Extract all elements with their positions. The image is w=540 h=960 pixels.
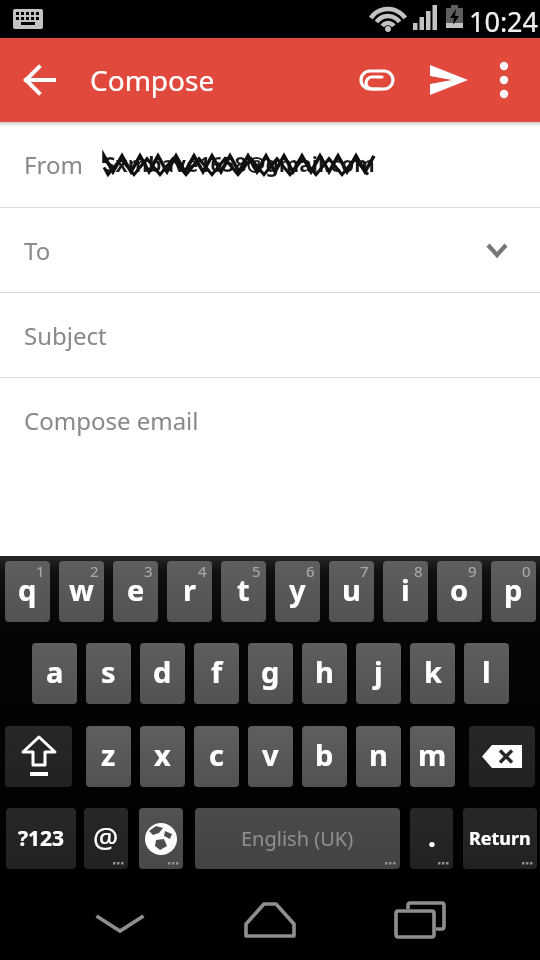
button[interactable]: a: [32, 643, 77, 704]
button[interactable]: i: [383, 561, 428, 622]
staticText: 5: [252, 561, 261, 581]
button[interactable]: [12, 52, 68, 108]
staticText: 6: [306, 561, 315, 581]
button[interactable]: [469, 726, 535, 787]
staticText: ?123: [18, 824, 65, 853]
staticText: c: [209, 735, 224, 774]
button[interactable]: English (UK): [195, 808, 400, 869]
staticText: n: [369, 735, 388, 774]
staticText: English (UK): [241, 825, 354, 852]
staticText: .: [428, 817, 436, 855]
button[interactable]: p: [491, 561, 536, 622]
button[interactable]: n: [356, 726, 401, 787]
staticText: 8: [414, 561, 423, 581]
staticText: 3: [144, 561, 153, 581]
button[interactable]: From: [0, 122, 540, 207]
button[interactable]: [45, 880, 195, 960]
staticText: 1: [36, 561, 45, 581]
staticText: g: [261, 652, 280, 691]
staticText: k: [424, 652, 442, 691]
button[interactable]: Return: [463, 808, 537, 869]
staticText: 9: [468, 561, 477, 581]
button[interactable]: z: [86, 726, 131, 787]
staticText: m: [418, 735, 447, 774]
button[interactable]: q: [5, 561, 50, 622]
button[interactable]: e: [113, 561, 158, 622]
button[interactable]: v: [248, 726, 293, 787]
staticText: r: [183, 570, 196, 609]
button[interactable]: f: [194, 643, 239, 704]
staticText: u: [342, 570, 361, 609]
button[interactable]: w: [59, 561, 104, 622]
button[interactable]: c: [194, 726, 239, 787]
staticText: e: [127, 570, 145, 609]
staticText: h: [315, 652, 334, 691]
staticText: w: [69, 570, 94, 609]
staticText: @: [93, 818, 119, 856]
button[interactable]: o: [437, 561, 482, 622]
staticText: j: [374, 652, 383, 691]
staticText: Subject: [24, 319, 107, 352]
button[interactable]: y: [275, 561, 320, 622]
button[interactable]: .: [410, 808, 453, 869]
button[interactable]: d: [140, 643, 185, 704]
staticText: v: [262, 735, 279, 774]
staticText: 4: [198, 561, 207, 581]
button[interactable]: [195, 880, 345, 960]
button[interactable]: b: [302, 726, 347, 787]
staticText: Return: [469, 826, 531, 851]
button[interactable]: m: [410, 726, 455, 787]
staticText: z: [101, 735, 116, 774]
staticText: Compose email: [24, 404, 199, 437]
staticText: b: [315, 735, 334, 774]
staticText: 7: [360, 561, 369, 581]
button[interactable]: t: [221, 561, 266, 622]
button[interactable]: l: [464, 643, 509, 704]
staticText: 10:24: [469, 3, 539, 40]
staticText: p: [504, 570, 523, 609]
staticText: To: [24, 234, 51, 267]
staticText: Compose: [90, 61, 215, 99]
staticText: 0: [522, 561, 531, 581]
button[interactable]: s: [86, 643, 131, 704]
staticText: Sxmbave1658@gmail.com: [104, 150, 375, 179]
staticText: a: [46, 652, 64, 691]
staticText: i: [401, 570, 410, 609]
button[interactable]: [5, 726, 72, 787]
button[interactable]: [420, 51, 478, 109]
button[interactable]: [348, 51, 406, 109]
button[interactable]: x: [140, 726, 185, 787]
staticText: From: [24, 148, 83, 181]
staticText: s: [101, 652, 116, 691]
staticText: f: [211, 652, 223, 691]
button[interactable]: k: [410, 643, 455, 704]
button[interactable]: @: [84, 808, 128, 869]
staticText: 2: [90, 561, 99, 581]
staticText: x: [154, 735, 171, 774]
button[interactable]: h: [302, 643, 347, 704]
button[interactable]: Subject: [0, 293, 540, 377]
staticText: d: [153, 652, 172, 691]
staticText: q: [18, 570, 37, 609]
button[interactable]: [139, 808, 183, 869]
button[interactable]: u: [329, 561, 374, 622]
button[interactable]: j: [356, 643, 401, 704]
staticText: t: [237, 570, 250, 609]
button[interactable]: g: [248, 643, 293, 704]
button[interactable]: r: [167, 561, 212, 622]
staticText: y: [289, 570, 306, 609]
staticText: l: [482, 652, 491, 691]
button[interactable]: ?123: [6, 808, 76, 869]
button[interactable]: [478, 51, 530, 109]
button[interactable]: To: [0, 208, 540, 292]
button[interactable]: Compose email: [0, 378, 540, 463]
button[interactable]: [345, 880, 495, 960]
staticText: o: [450, 570, 469, 609]
